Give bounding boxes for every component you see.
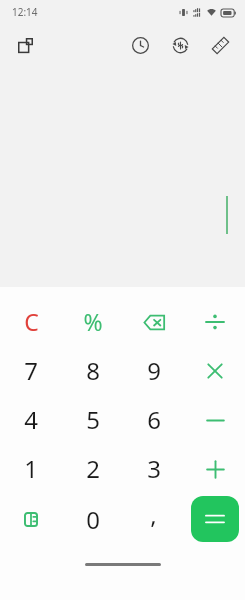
staticText: 2	[86, 452, 100, 485]
button[interactable]: 1	[0, 444, 62, 493]
staticText: 4	[24, 403, 38, 436]
staticText: C	[24, 306, 39, 337]
button[interactable]: 6	[123, 395, 184, 444]
staticText: 1	[24, 452, 38, 485]
button[interactable]: 2	[62, 444, 123, 493]
staticText: 5	[86, 403, 100, 436]
staticText: 12:14	[12, 5, 38, 19]
button[interactable]: Currency converter	[163, 28, 197, 62]
button[interactable]: Unit converter	[203, 28, 237, 62]
button[interactable]: Backspace	[123, 297, 184, 346]
staticText: %	[83, 306, 103, 337]
staticText: 3	[147, 452, 161, 485]
button[interactable]: 3	[123, 444, 184, 493]
other: Backspace	[137, 305, 171, 339]
other: Scientific mode	[16, 504, 46, 534]
staticText: 6	[147, 403, 161, 436]
button[interactable]: %	[62, 297, 123, 346]
button[interactable]: Split screen	[8, 28, 42, 62]
button[interactable]: Scientific mode	[0, 493, 62, 545]
button[interactable]: Equals	[191, 496, 239, 542]
button[interactable]: 0	[62, 493, 123, 545]
button[interactable]: Minus	[184, 395, 245, 444]
button[interactable]: Divide	[184, 297, 245, 346]
staticText: 8	[86, 354, 100, 387]
other: Multiply	[198, 354, 232, 388]
other: Minus	[198, 403, 232, 437]
button[interactable]: ,	[123, 493, 184, 545]
staticText: ,	[150, 498, 157, 531]
staticText: 0	[86, 503, 100, 536]
button[interactable]: C	[0, 297, 62, 346]
other: Divide	[198, 305, 232, 339]
button[interactable]: 7	[0, 346, 62, 395]
staticText: 9	[147, 354, 161, 387]
button[interactable]: Plus	[184, 444, 245, 493]
staticText: 7	[24, 354, 38, 387]
button[interactable]: 8	[62, 346, 123, 395]
button[interactable]: History	[123, 28, 157, 62]
button[interactable]: Multiply	[184, 346, 245, 395]
other: Plus	[198, 452, 232, 486]
button[interactable]: 9	[123, 346, 184, 395]
button[interactable]: 4	[0, 395, 62, 444]
button[interactable]: 5	[62, 395, 123, 444]
